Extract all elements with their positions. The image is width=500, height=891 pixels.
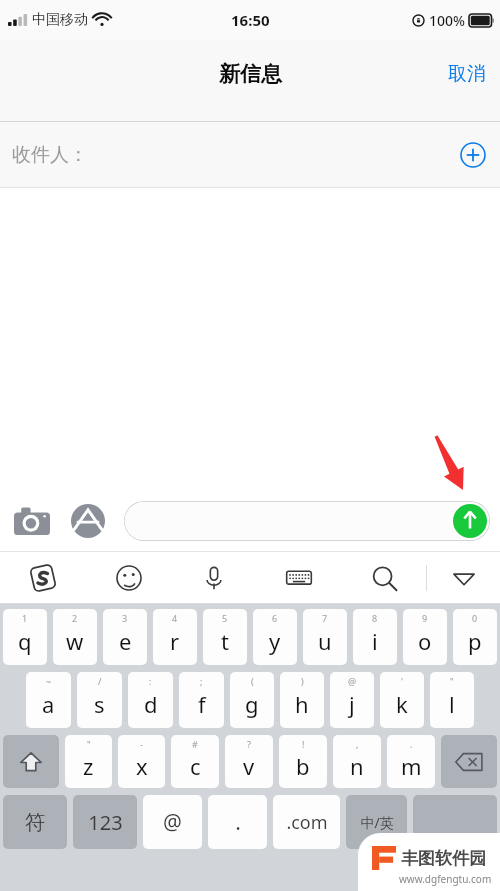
- button[interactable]: Send: [124, 501, 490, 541]
- button[interactable]: 123: [73, 795, 137, 849]
- staticText: x: [136, 751, 148, 781]
- staticText: a: [42, 689, 55, 719]
- staticText: #: [192, 738, 198, 750]
- button[interactable]: 符: [3, 795, 67, 849]
- button[interactable]: Voice input: [171, 552, 256, 604]
- button[interactable]: Keyboard layout: [256, 552, 341, 604]
- staticText: @: [163, 808, 182, 837]
- button[interactable]: App Store: [68, 501, 108, 541]
- staticText: ': [401, 675, 404, 687]
- staticText: k: [396, 689, 408, 719]
- staticText: 9: [422, 612, 428, 624]
- button[interactable]: :: [128, 672, 173, 728]
- staticText: 16:50: [231, 10, 270, 30]
- staticText: 取消: [448, 62, 486, 86]
- button[interactable]: ': [380, 672, 424, 728]
- staticText: 2: [72, 612, 78, 624]
- button[interactable]: @: [330, 672, 374, 728]
- button[interactable]: Send: [452, 503, 488, 539]
- button[interactable]: 6: [253, 609, 297, 665]
- staticText: t: [221, 626, 229, 656]
- staticText: .com: [286, 810, 328, 835]
- button[interactable]: .: [387, 735, 435, 788]
- staticText: v: [243, 751, 255, 781]
- button[interactable]: Emoji: [86, 552, 171, 604]
- staticText: i: [372, 626, 378, 656]
- staticText: d: [144, 689, 158, 719]
- button[interactable]: 取消: [434, 54, 500, 94]
- button[interactable]: ~: [26, 672, 71, 728]
- staticText: (: [251, 675, 254, 687]
- button[interactable]: Shift: [3, 735, 59, 788]
- staticText: /: [98, 675, 102, 687]
- button[interactable]: 3: [103, 609, 147, 665]
- button[interactable]: Sogou input: [0, 552, 86, 604]
- staticText: n: [350, 751, 364, 781]
- staticText: @: [348, 675, 357, 687]
- staticText: 丰图软件园: [401, 848, 486, 869]
- staticText: 3: [122, 612, 128, 624]
- staticText: e: [119, 626, 132, 656]
- staticText: q: [18, 626, 32, 656]
- button[interactable]: 5: [203, 609, 247, 665]
- button[interactable]: Backspace: [441, 735, 497, 788]
- staticText: z: [83, 751, 94, 781]
- staticText: f: [198, 689, 206, 719]
- staticText: .: [235, 808, 241, 837]
- button[interactable]: (: [230, 672, 274, 728]
- staticText: ~: [46, 675, 52, 687]
- staticText: :: [149, 675, 152, 687]
- staticText: 收件人：: [12, 143, 88, 167]
- button[interactable]: 0: [453, 609, 497, 665]
- staticText: b: [296, 751, 310, 781]
- button[interactable]: ": [65, 735, 112, 788]
- button[interactable]: Camera: [10, 499, 54, 543]
- staticText: ,: [356, 738, 359, 750]
- button[interactable]: 7: [303, 609, 347, 665]
- button[interactable]: -: [118, 735, 165, 788]
- button[interactable]: Return: [413, 795, 497, 849]
- button[interactable]: Add contact: [458, 140, 488, 170]
- staticText: c: [190, 751, 201, 781]
- button[interactable]: ;: [179, 672, 224, 728]
- button[interactable]: /: [77, 672, 122, 728]
- button[interactable]: ,: [333, 735, 381, 788]
- button[interactable]: 8: [353, 609, 397, 665]
- staticText: .: [410, 738, 413, 750]
- button[interactable]: 4: [153, 609, 197, 665]
- staticText: ?: [247, 738, 251, 750]
- staticText: !: [302, 738, 305, 750]
- button[interactable]: 2: [53, 609, 97, 665]
- staticText: 5: [222, 612, 228, 624]
- staticText: -: [140, 738, 143, 750]
- staticText: ): [301, 675, 304, 687]
- button[interactable]: Search: [341, 552, 426, 604]
- staticText: w: [66, 626, 84, 656]
- staticText: m: [401, 751, 422, 781]
- button[interactable]: ?: [225, 735, 273, 788]
- button[interactable]: .: [208, 795, 267, 849]
- staticText: 0: [472, 612, 478, 624]
- button[interactable]: ": [430, 672, 474, 728]
- button[interactable]: 中/英: [346, 795, 407, 849]
- button[interactable]: ): [280, 672, 324, 728]
- button[interactable]: 9: [403, 609, 447, 665]
- staticText: u: [318, 626, 332, 656]
- button[interactable]: 1: [3, 609, 47, 665]
- staticText: g: [245, 689, 259, 719]
- button[interactable]: #: [171, 735, 219, 788]
- button[interactable]: Hide keyboard: [427, 552, 500, 604]
- button[interactable]: .com: [273, 795, 340, 849]
- staticText: 符: [25, 810, 45, 835]
- button[interactable]: @: [143, 795, 202, 849]
- staticText: 8: [372, 612, 378, 624]
- staticText: o: [418, 626, 432, 656]
- staticText: ": [450, 675, 454, 687]
- staticText: y: [269, 626, 281, 656]
- button[interactable]: 收件人：: [0, 122, 500, 188]
- staticText: p: [468, 626, 482, 656]
- button[interactable]: !: [279, 735, 327, 788]
- staticText: l: [449, 689, 455, 719]
- staticText: ": [87, 738, 91, 750]
- staticText: h: [295, 689, 309, 719]
